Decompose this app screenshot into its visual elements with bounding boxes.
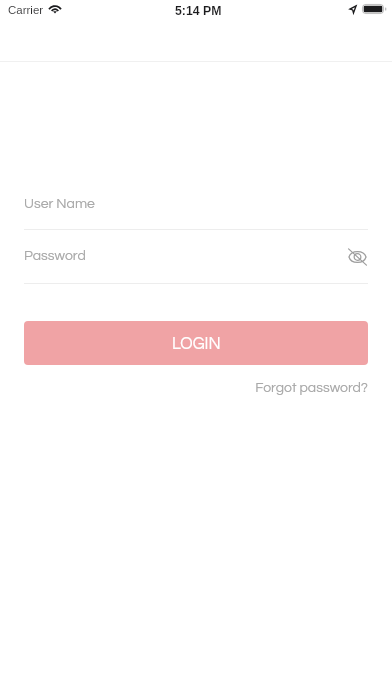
staticText: Password — [24, 249, 340, 263]
button[interactable]: LOGIN — [24, 321, 368, 365]
staticText: Carrier — [8, 4, 44, 17]
staticText: LOGIN — [172, 335, 221, 352]
button[interactable]: Show password — [340, 244, 368, 268]
staticText: User Name — [24, 197, 95, 211]
staticText: 5:14 PM — [175, 4, 222, 18]
button[interactable]: Forgot password? — [24, 381, 368, 395]
